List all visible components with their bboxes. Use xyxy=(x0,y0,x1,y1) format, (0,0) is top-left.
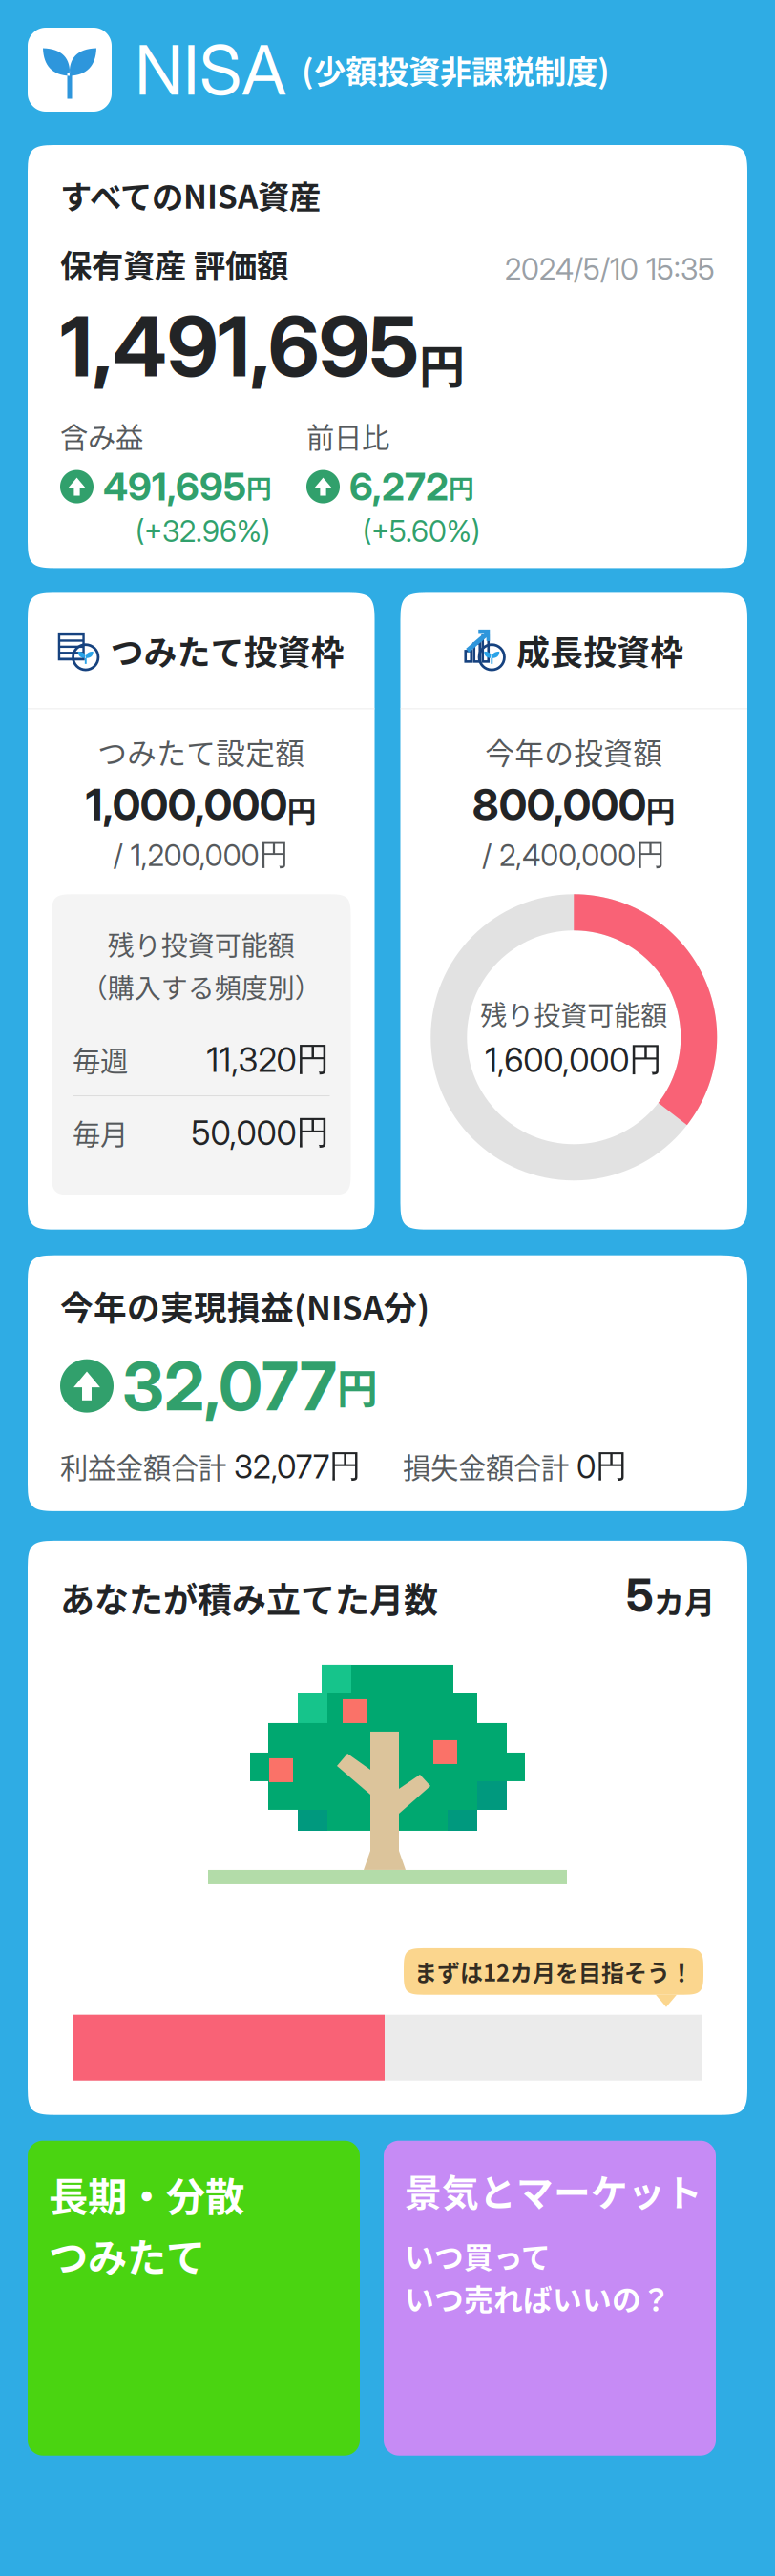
staticText: 毎月 xyxy=(73,1112,128,1153)
staticText: 5 xyxy=(626,1567,654,1623)
staticText: 今年の投資額 xyxy=(485,730,663,773)
staticText: 32,077 xyxy=(122,1345,337,1427)
staticText: 11,320円 xyxy=(207,1038,330,1080)
staticText: (+32.96%) xyxy=(136,514,270,549)
button[interactable]: NISA xyxy=(28,28,747,112)
staticText: / 1,200,000円 xyxy=(113,836,289,873)
staticText: いつ売ればいいの？ xyxy=(405,2277,671,2319)
staticText: 1,000,000 xyxy=(86,778,287,831)
staticText: いつ買って xyxy=(405,2234,551,2277)
staticText: 円 xyxy=(449,468,474,505)
staticText: 残り投資可能額 xyxy=(480,994,667,1033)
staticText: すべてのNISA資産 xyxy=(60,172,321,218)
staticText: 円 xyxy=(646,788,676,831)
staticText: 景気とマーケット xyxy=(405,2164,702,2217)
staticText: 1,600,000円 xyxy=(485,1039,663,1080)
staticText: / 2,400,000円 xyxy=(482,836,665,873)
staticText: （購入する頻度別） xyxy=(81,967,321,1006)
button[interactable]: 景気とマーケット xyxy=(384,2141,716,2456)
staticText: 2024/5/10 15:35 xyxy=(505,251,715,287)
staticText: 円 xyxy=(419,330,465,396)
staticText: 1,491,695 xyxy=(60,296,419,396)
staticText: 6,272 xyxy=(349,464,449,510)
staticText: NISA xyxy=(135,28,286,111)
staticText: 円 xyxy=(287,788,317,831)
button[interactable]: 成長投資枠 xyxy=(400,593,747,1230)
staticText: 保有資産 評価額 xyxy=(60,241,288,287)
staticText: 長期・分散 xyxy=(49,2165,244,2223)
staticText: 成長投資枠 xyxy=(517,627,684,675)
staticText: 利益金額合計 xyxy=(60,1446,226,1486)
staticText: 32,077円 xyxy=(226,1446,361,1486)
staticText: 今年の実現損益(NISA分) xyxy=(60,1282,429,1330)
staticText: 毎週 xyxy=(73,1039,128,1080)
staticText: まずは12カ月を目指そう！ xyxy=(414,1955,693,1988)
staticText: つみたて投資枠 xyxy=(111,627,344,675)
staticText: 491,695 xyxy=(103,464,246,510)
staticText: 前日比 xyxy=(306,415,389,456)
staticText: 円 xyxy=(246,468,272,505)
button[interactable]: つみたて投資枠 xyxy=(28,593,375,1230)
staticText: 損失金額合計 xyxy=(403,1446,569,1486)
staticText: 0円 xyxy=(569,1446,627,1486)
staticText: (+5.60%) xyxy=(363,514,480,549)
staticText: 含み益 xyxy=(60,415,143,456)
button[interactable]: 長期・分散 xyxy=(28,2141,360,2456)
staticText: (少額投資非課税制度) xyxy=(302,47,610,93)
staticText: 残り投資可能額 xyxy=(108,925,295,963)
staticText: 800,000 xyxy=(472,778,646,831)
staticText: 円 xyxy=(337,1357,378,1415)
staticText: あなたが積み立てた月数 xyxy=(60,1573,438,1623)
staticText: 50,000円 xyxy=(191,1111,330,1153)
staticText: カ月 xyxy=(654,1579,715,1623)
staticText: つみたて設定額 xyxy=(98,730,305,773)
staticText: つみたて xyxy=(49,2226,205,2284)
